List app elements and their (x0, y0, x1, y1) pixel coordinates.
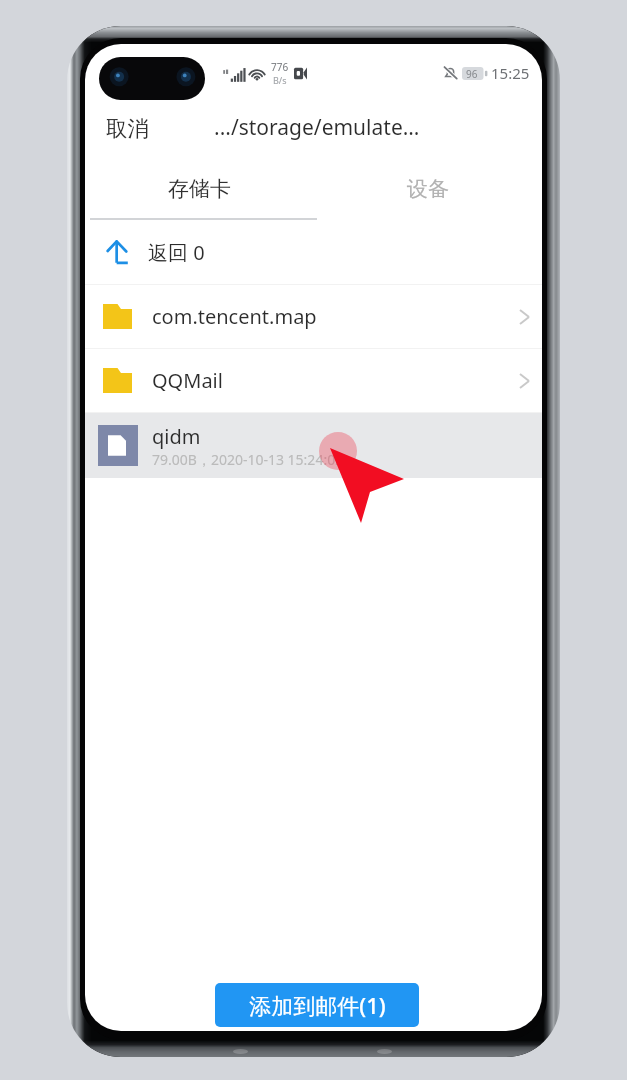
staticText: QQMail (152, 367, 223, 394)
button[interactable]: qidm (85, 413, 542, 478)
button[interactable]: 添加到邮件(1) (215, 983, 419, 1027)
staticText: 添加到邮件(1) (249, 990, 386, 1020)
staticText: 776 (271, 60, 289, 74)
staticText: com.tencent.map (152, 303, 317, 330)
staticText: 96 (466, 67, 478, 80)
button[interactable]: com.tencent.map (85, 285, 542, 348)
staticText: 存储卡 (168, 176, 231, 202)
staticText: .../storage/emulate… (214, 113, 420, 142)
staticText: 15:25 (491, 63, 530, 83)
staticText: 取消 (106, 115, 149, 142)
staticText: 设备 (407, 176, 449, 202)
staticText: 返回 0 (148, 239, 205, 266)
staticText: B/s (273, 74, 287, 86)
staticText: 79.00B，2020-10-13 15:24:02 (152, 450, 344, 469)
staticText: qidm (152, 423, 201, 450)
button[interactable]: 返回 0 (85, 220, 542, 284)
button[interactable]: 设备 (313, 160, 542, 218)
button[interactable]: 取消 (94, 105, 161, 152)
button[interactable]: 存储卡 (85, 160, 313, 218)
button[interactable]: QQMail (85, 349, 542, 412)
